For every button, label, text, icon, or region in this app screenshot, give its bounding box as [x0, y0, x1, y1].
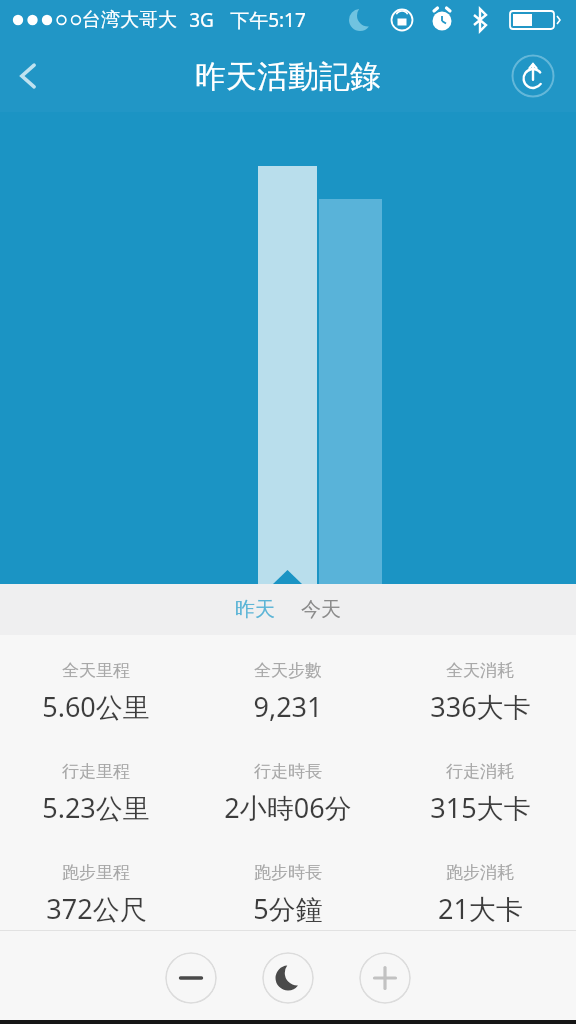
button[interactable]: 行走消耗 — [384, 761, 576, 826]
staticText: 9,231 — [253, 688, 323, 725]
staticText: 跑步消耗 — [446, 862, 514, 883]
staticText: 全天步數 — [254, 660, 322, 681]
button[interactable]: 行走時長 — [192, 761, 384, 826]
staticText: 行走時長 — [254, 761, 322, 782]
button[interactable]: 全天里程 — [0, 660, 192, 725]
staticText: 昨天 — [235, 597, 275, 622]
staticText: 315大卡 — [430, 789, 531, 826]
button[interactable]: 跑步消耗 — [384, 862, 576, 927]
staticText: 3G — [189, 7, 214, 33]
staticText: 行走里程 — [62, 761, 130, 782]
staticText: 下午5:17 — [230, 7, 306, 33]
staticText: 跑步里程 — [62, 862, 130, 883]
button[interactable]: Back — [0, 40, 56, 112]
button[interactable]: Increase — [359, 952, 411, 1004]
staticText: 昨天活動記錄 — [195, 57, 381, 96]
staticText: 台湾大哥大 — [82, 8, 177, 32]
staticText: 5分鐘 — [253, 890, 323, 927]
button[interactable]: 跑步里程 — [0, 862, 192, 927]
button[interactable]: 全天步數 — [192, 660, 384, 725]
staticText: 5.23公里 — [42, 789, 150, 826]
button[interactable]: 全天消耗 — [384, 660, 576, 725]
staticText: 21大卡 — [438, 890, 523, 927]
staticText: 2小時06分 — [224, 789, 352, 826]
staticText: 全天消耗 — [446, 660, 514, 681]
button[interactable]: Decrease — [165, 952, 217, 1004]
button[interactable]: 行走里程 — [0, 761, 192, 826]
staticText: 今天 — [301, 597, 341, 622]
staticText: 全天里程 — [62, 660, 130, 681]
staticText: 372公尺 — [46, 890, 147, 927]
button[interactable]: 昨天 — [222, 584, 288, 635]
staticText: 跑步時長 — [254, 862, 322, 883]
staticText: 336大卡 — [430, 688, 531, 725]
button[interactable]: 跑步時長 — [192, 862, 384, 927]
button[interactable]: Sleep mode — [262, 952, 314, 1004]
staticText: 行走消耗 — [446, 761, 514, 782]
button[interactable]: 今天 — [288, 584, 354, 635]
button[interactable]: Sync — [511, 54, 555, 98]
staticText: 5.60公里 — [42, 688, 150, 725]
